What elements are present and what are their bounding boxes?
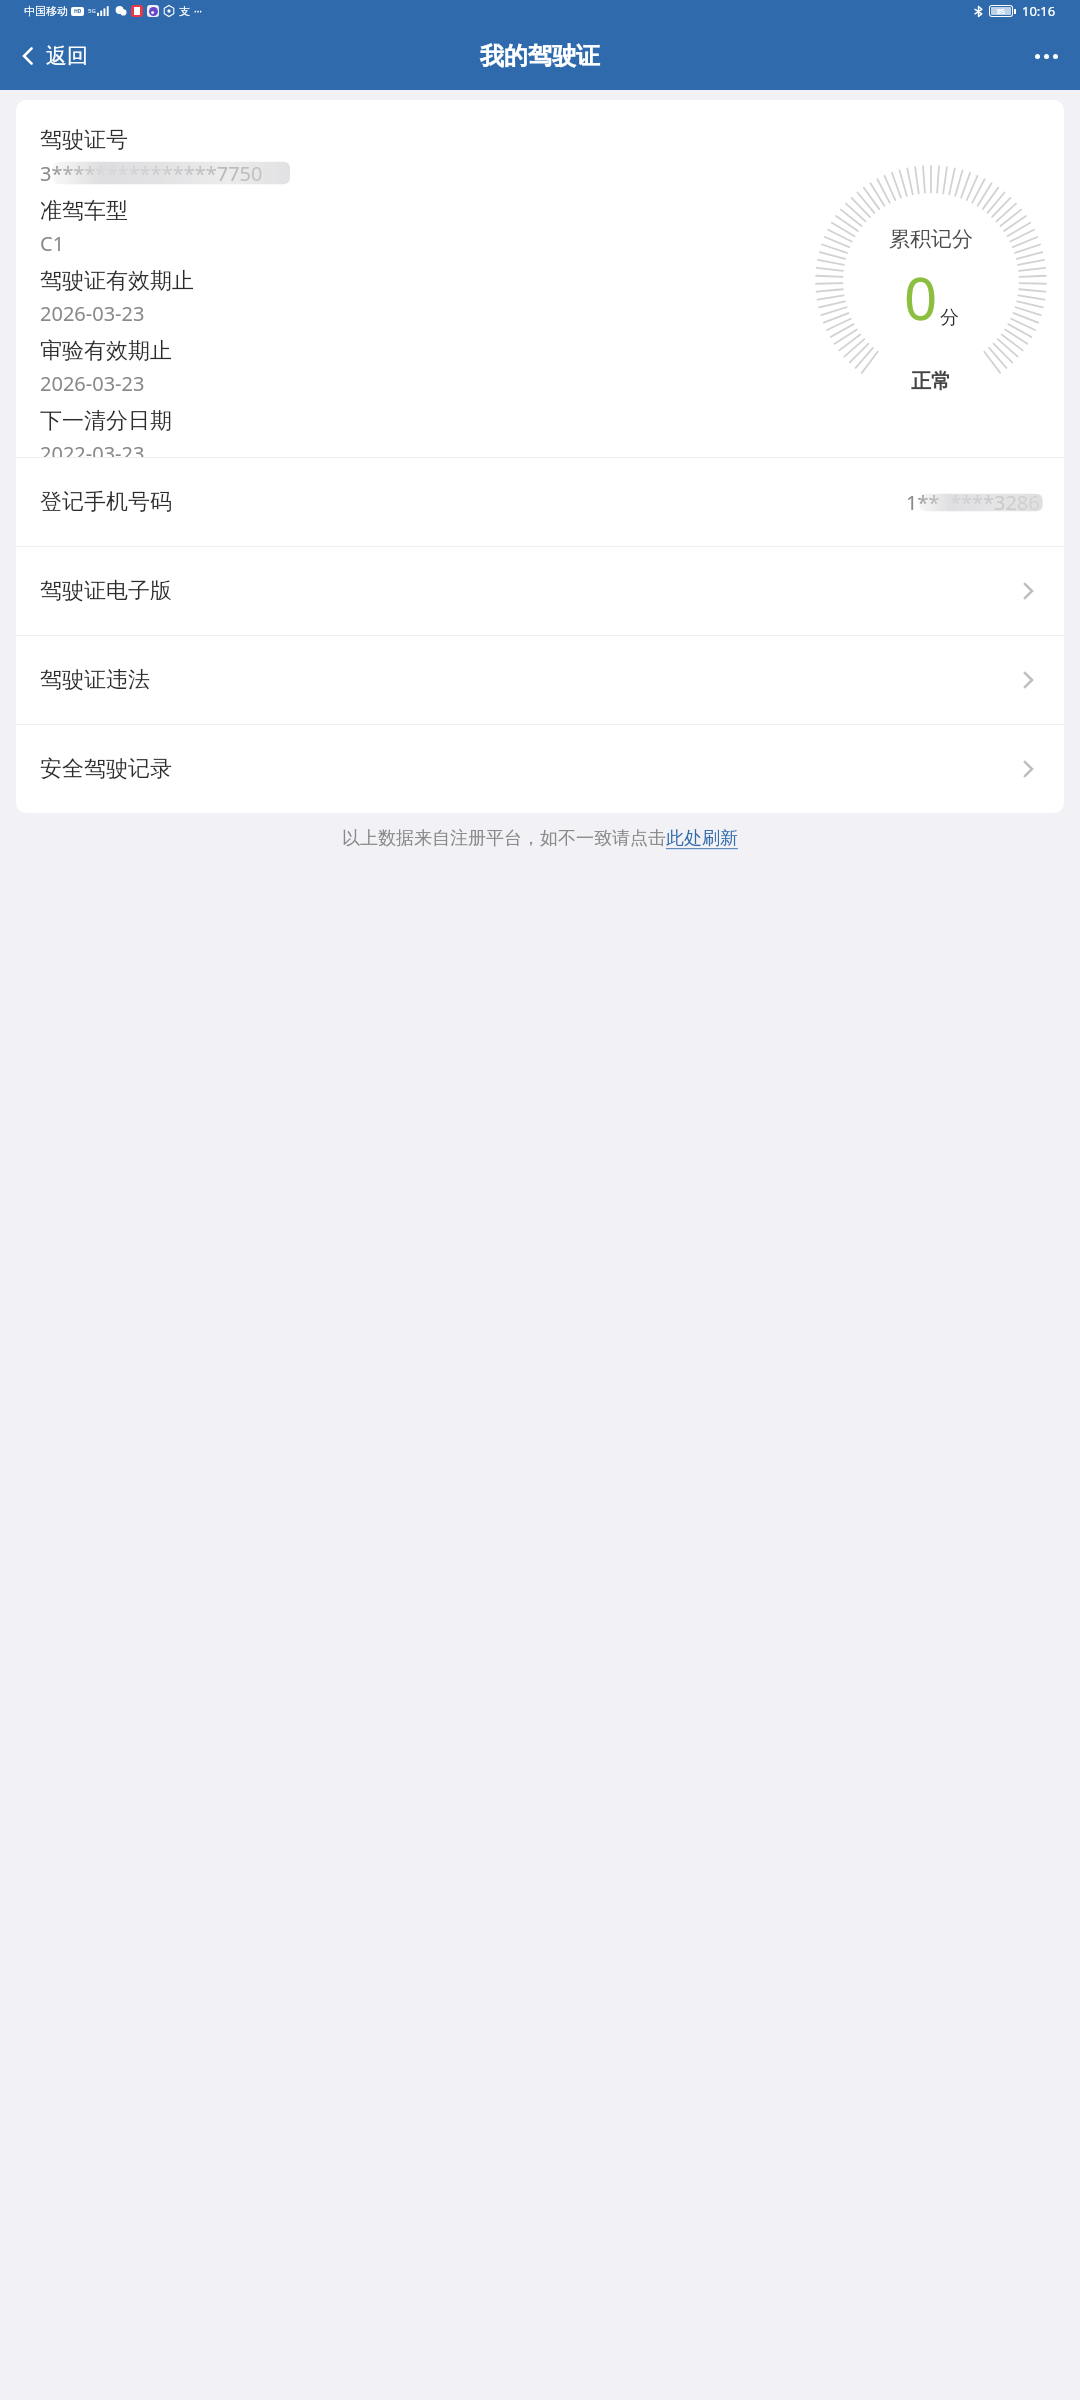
staticText: 登记手机号码: [40, 488, 172, 516]
staticText: 驾驶证号: [40, 126, 128, 154]
staticText: 驾驶证电子版: [40, 577, 172, 605]
button[interactable]: 登记手机号码: [16, 458, 1064, 546]
staticText: 准驾车型: [40, 197, 128, 225]
staticText: 下一清分日期: [40, 407, 172, 435]
staticText: 3***************7750: [40, 160, 263, 187]
staticText: 安全驾驶记录: [40, 755, 172, 783]
staticText: 2022-03-23: [40, 440, 145, 457]
staticText: 分: [940, 306, 959, 330]
button[interactable]: 以上数据来自注册平台，如不一致请点击此处刷新: [342, 827, 738, 850]
staticText: 5G: [88, 7, 96, 15]
staticText: 我的驾驶证: [480, 41, 600, 71]
staticText: 2026-03-23: [40, 300, 145, 327]
staticText: 支: [179, 4, 190, 18]
staticText: 驾驶证违法: [40, 666, 150, 694]
staticText: 审验有效期止: [40, 337, 172, 365]
staticText: 返回: [46, 43, 88, 69]
staticText: 10:16: [1022, 2, 1056, 20]
staticText: 1** ****3286: [906, 489, 1040, 516]
staticText: HD: [74, 8, 82, 15]
staticText: 2026-03-23: [40, 370, 145, 397]
button[interactable]: 驾驶证违法: [16, 636, 1064, 724]
staticText: ···: [194, 4, 203, 18]
button[interactable]: More options: [1013, 22, 1080, 90]
button[interactable]: 返回: [0, 22, 100, 90]
staticText: 累积记分: [889, 226, 973, 252]
staticText: 85: [997, 7, 1006, 15]
button[interactable]: 安全驾驶记录: [16, 725, 1064, 813]
staticText: 0: [904, 258, 938, 337]
button[interactable]: 驾驶证电子版: [16, 547, 1064, 635]
staticText: 驾驶证有效期止: [40, 267, 194, 295]
staticText: 正常: [911, 369, 951, 394]
staticText: C1: [40, 230, 65, 257]
staticText: 中国移动: [24, 4, 68, 18]
